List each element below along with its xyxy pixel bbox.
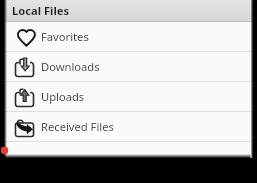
staticText: Uploads bbox=[41, 89, 85, 104]
button[interactable]: Favorites bbox=[4, 22, 253, 51]
button[interactable]: Uploads bbox=[4, 82, 253, 111]
staticText: Favorites bbox=[41, 29, 89, 44]
staticText: Local Files bbox=[12, 3, 70, 18]
button[interactable]: Received Files bbox=[4, 112, 253, 141]
staticText: Received Files bbox=[41, 119, 114, 134]
button[interactable]: Downloads bbox=[4, 52, 253, 81]
staticText: Downloads bbox=[41, 59, 100, 74]
